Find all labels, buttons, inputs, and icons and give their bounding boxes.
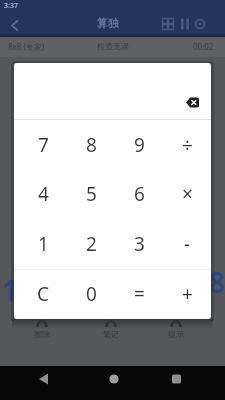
button[interactable]: 8 [67,120,115,169]
button[interactable]: 0 [67,269,115,319]
staticText: 3 [134,231,145,257]
staticText: 5 [86,181,97,207]
staticText: 8x8 (专家) [8,41,45,52]
button[interactable] [180,18,190,30]
staticText: - [184,231,191,257]
button[interactable] [171,373,182,385]
staticText: 2 [86,231,97,257]
staticText: 00:02 [193,41,214,52]
staticText: 提示 [168,329,184,339]
staticText: 8 [209,263,225,301]
staticText: 1 [38,231,49,257]
staticText: 8 [86,132,97,158]
button[interactable] [10,20,20,31]
button[interactable]: 擦除 [24,319,60,345]
button[interactable]: 提示 [158,319,194,345]
button[interactable]: 4 [20,169,67,219]
staticText: 笔记 [103,329,119,339]
button[interactable]: 9 [115,120,163,169]
staticText: 0 [86,281,97,307]
button[interactable]: ÷ [163,120,211,169]
button[interactable]: + [163,269,211,319]
staticText: 9 [134,132,145,158]
staticText: 擦除 [34,329,50,339]
button[interactable] [38,373,50,385]
button[interactable]: 1 [20,219,67,269]
button[interactable]: 6 [115,169,163,219]
staticText: × [182,181,193,207]
staticText: 1 [2,271,19,309]
button[interactable]: × [163,169,211,219]
staticText: 检查无误 [97,41,129,51]
staticText: 3:37 [4,1,18,11]
staticText: + [182,281,193,307]
button[interactable]: 笔记 [93,319,129,345]
button[interactable]: 5 [67,169,115,219]
staticText: 算独 [97,16,119,30]
button[interactable]: 7 [20,120,67,169]
staticText: 6 [134,181,145,207]
button[interactable] [162,18,174,30]
staticText: C [37,281,50,307]
staticText: = [134,281,145,307]
button[interactable]: 3 [115,219,163,269]
button[interactable] [108,373,120,385]
button[interactable] [186,97,199,108]
staticText: ÷ [182,132,193,158]
button[interactable]: C [20,269,67,319]
staticText: 7 [38,132,49,158]
button[interactable]: - [163,219,211,269]
button[interactable]: 2 [67,219,115,269]
button[interactable]: = [115,269,163,319]
staticText: 4 [38,181,49,207]
button[interactable] [194,18,206,30]
